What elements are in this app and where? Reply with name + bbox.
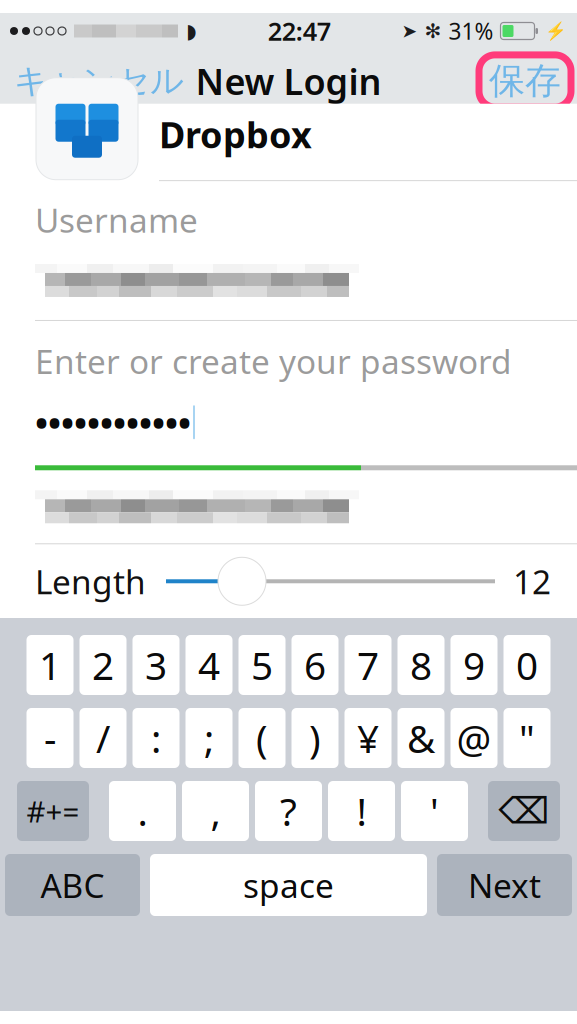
staticText: New Login — [195, 57, 381, 105]
staticText: ) — [309, 712, 321, 764]
staticText: 4 — [198, 639, 220, 691]
staticText: ⌫ — [498, 791, 549, 831]
button[interactable]: ( — [238, 708, 285, 768]
staticText: Next — [468, 863, 541, 907]
staticText: キャンセル — [14, 60, 184, 101]
button[interactable]: 5 — [238, 635, 285, 695]
staticText: Length — [35, 559, 146, 603]
staticText: ( — [256, 712, 268, 764]
staticText: ' — [430, 785, 439, 837]
button[interactable]: ABC — [5, 854, 140, 916]
button[interactable]: . — [109, 781, 176, 841]
staticText: Dropbox — [159, 110, 312, 158]
staticText: 31% — [448, 16, 493, 46]
button[interactable]: More symbols — [17, 781, 89, 841]
button[interactable]: ' — [401, 781, 468, 841]
staticText: 2 — [92, 639, 114, 691]
staticText: & — [407, 712, 435, 764]
staticText: ABC — [40, 863, 104, 907]
staticText: 0 — [516, 639, 538, 691]
button[interactable]: キャンセル — [0, 52, 184, 109]
staticText: 7 — [357, 639, 379, 691]
staticText: . — [137, 785, 147, 837]
staticText: : — [151, 712, 161, 764]
staticText: 3 — [145, 639, 167, 691]
staticText: , — [210, 785, 220, 837]
button[interactable]: Next — [437, 854, 572, 916]
staticText: ◗ — [186, 20, 197, 42]
staticText: 12 — [513, 559, 551, 603]
button[interactable]: ! — [328, 781, 395, 841]
staticText: 保存 — [489, 59, 561, 103]
button[interactable]: 9 — [450, 635, 497, 695]
staticText: 22:47 — [268, 14, 331, 48]
staticText: " — [519, 712, 535, 764]
staticText: ? — [280, 785, 297, 837]
button[interactable]: , — [182, 781, 249, 841]
staticText: ; — [204, 712, 214, 764]
button[interactable]: @ — [450, 708, 497, 768]
staticText: 6 — [304, 639, 326, 691]
staticText: ¥ — [357, 712, 379, 764]
button[interactable]: ; — [185, 708, 232, 768]
staticText: 8 — [410, 639, 432, 691]
staticText: Enter or create your password — [35, 339, 512, 383]
button[interactable]: space — [150, 854, 427, 916]
staticText: ➤ — [401, 20, 417, 42]
button[interactable]: : — [132, 708, 179, 768]
button[interactable]: " — [503, 708, 550, 768]
button[interactable]: & — [397, 708, 444, 768]
button[interactable]: 7 — [344, 635, 391, 695]
button[interactable]: 8 — [397, 635, 444, 695]
staticText: ! — [356, 785, 366, 837]
button[interactable]: ) — [291, 708, 338, 768]
button[interactable]: - — [26, 708, 73, 768]
staticText: 5 — [251, 639, 273, 691]
button[interactable]: 4 — [185, 635, 232, 695]
button[interactable]: 保存 — [479, 55, 577, 107]
button[interactable]: 3 — [132, 635, 179, 695]
staticText: - — [44, 712, 56, 764]
staticText: @ — [456, 712, 491, 764]
button[interactable]: 2 — [79, 635, 126, 695]
button[interactable]: ? — [255, 781, 322, 841]
staticText: ✻ — [424, 20, 441, 42]
staticText: •••••••••••• — [35, 399, 191, 445]
staticText: / — [96, 712, 110, 764]
staticText: Username — [35, 198, 198, 242]
button[interactable]: 0 — [503, 635, 550, 695]
button[interactable]: Delete — [488, 781, 560, 841]
staticText: ⚡ — [545, 21, 567, 41]
button[interactable]: / — [79, 708, 126, 768]
button[interactable]: 1 — [26, 635, 73, 695]
staticText: 9 — [463, 639, 485, 691]
button[interactable]: 6 — [291, 635, 338, 695]
staticText: #+= — [26, 791, 79, 830]
button[interactable]: ¥ — [344, 708, 391, 768]
staticText: 1 — [39, 639, 61, 691]
staticText: space — [243, 863, 334, 907]
